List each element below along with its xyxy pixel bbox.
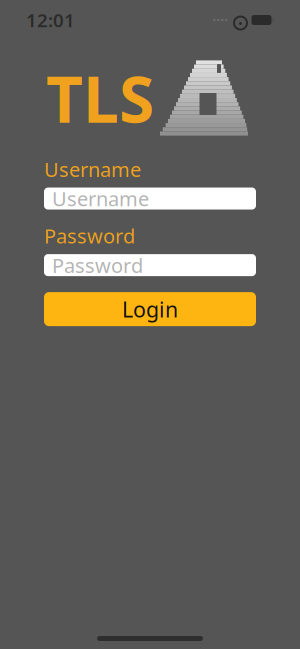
staticText: Password [52,252,143,278]
staticText: TLS [46,55,154,140]
staticText: 12:01 [26,8,75,32]
button[interactable]: Password [44,254,256,276]
staticText: Username [52,185,149,212]
staticText: Login [122,295,178,323]
staticText: Password [44,223,135,249]
button[interactable]: Login [44,292,256,326]
button[interactable]: Username [44,188,256,210]
staticText: Username [44,156,141,183]
